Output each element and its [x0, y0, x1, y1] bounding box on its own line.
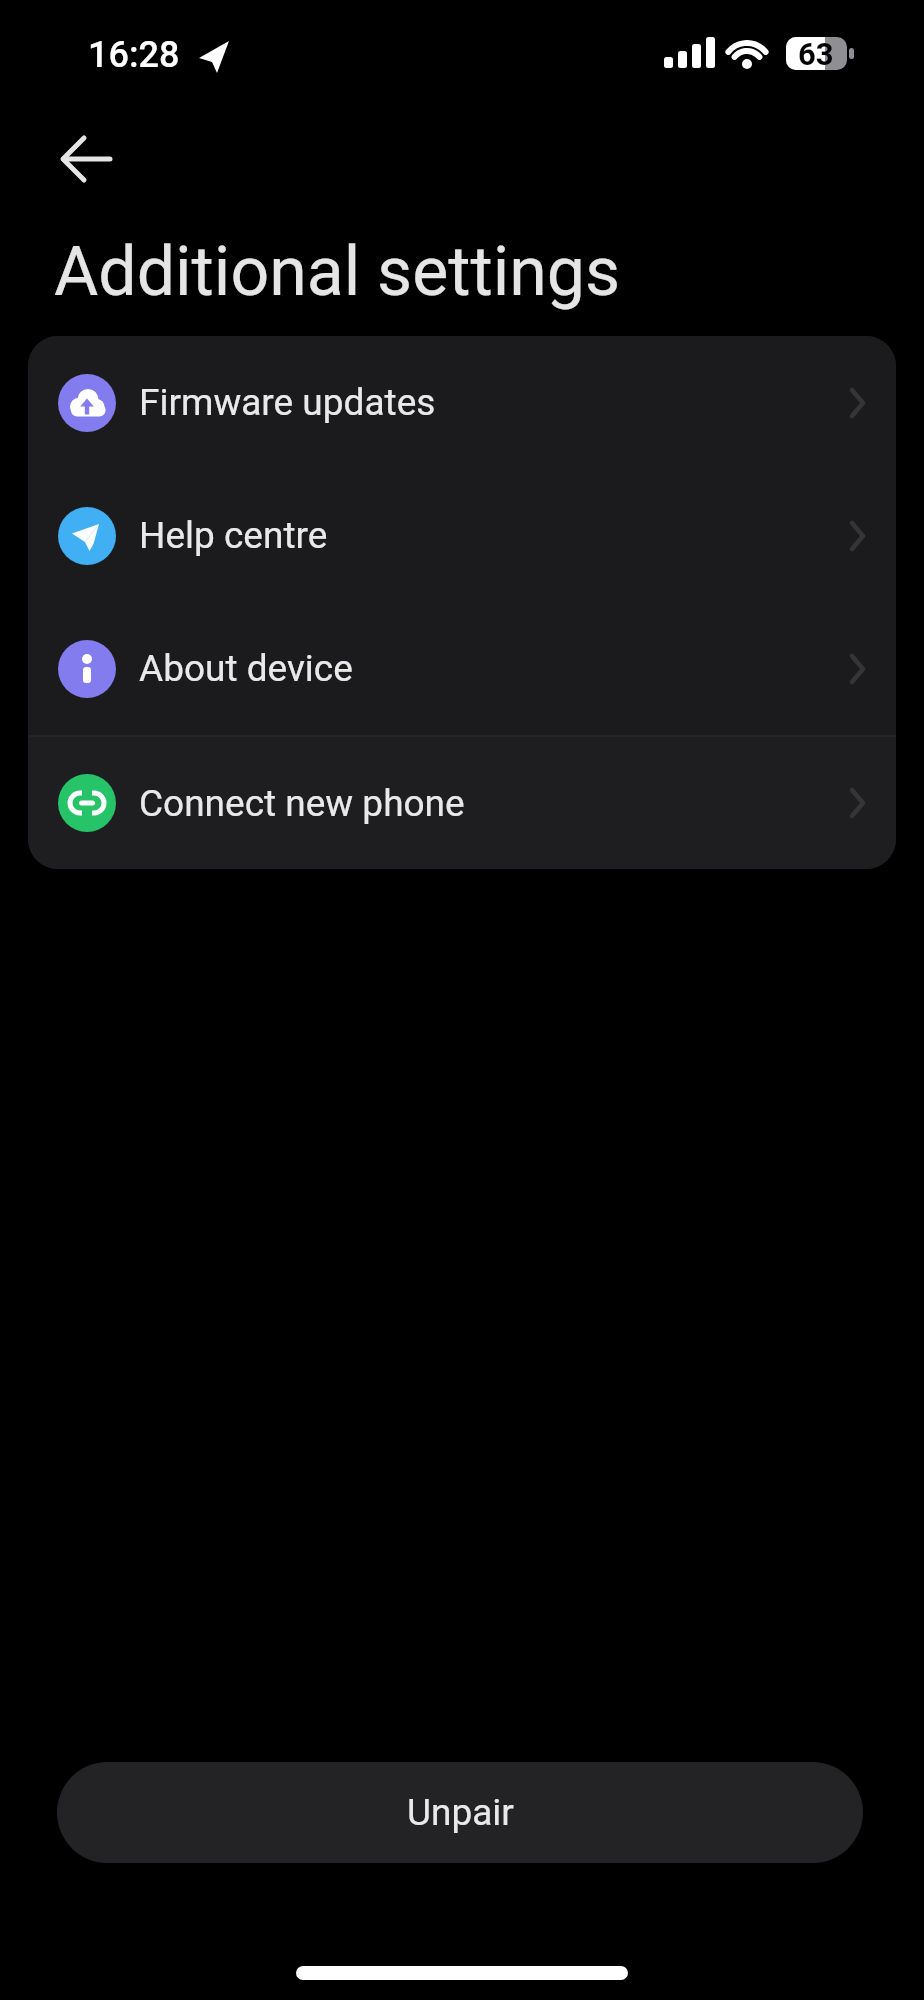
button[interactable]: About device [28, 602, 896, 735]
staticText: Connect new phone [139, 782, 465, 825]
button[interactable]: Connect new phone [28, 737, 896, 869]
staticText: Unpair [407, 1791, 514, 1834]
staticText: Firmware updates [139, 381, 436, 424]
staticText: Help centre [139, 514, 328, 557]
staticText: 63 [798, 36, 834, 72]
button[interactable]: Unpair [57, 1762, 863, 1863]
staticText: Additional settings [54, 232, 621, 312]
button[interactable] [48, 130, 118, 186]
button[interactable]: Firmware updates [28, 336, 896, 469]
staticText: About device [139, 647, 353, 690]
button[interactable]: Help centre [28, 469, 896, 602]
staticText: 16:28 [88, 34, 180, 76]
